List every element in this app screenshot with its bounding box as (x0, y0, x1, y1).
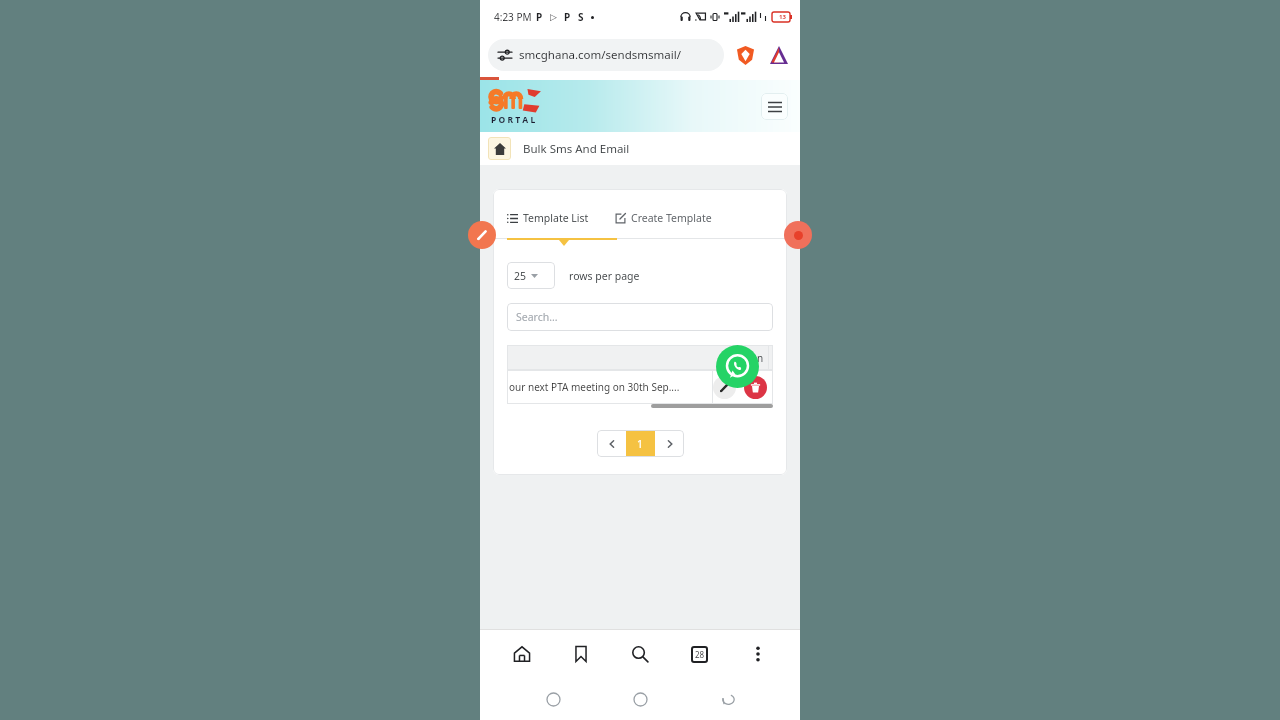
staticText: Template List (523, 211, 589, 225)
button[interactable]: Tabs, 28 open (682, 637, 716, 671)
button[interactable]: Compose (468, 221, 496, 249)
button[interactable]: Previous page (597, 430, 626, 457)
button[interactable]: smcghana.com/sendsmsmail/ (488, 39, 724, 71)
button[interactable]: Search... (507, 303, 773, 331)
staticText: smcghana.com/sendsmsmail/ (519, 47, 681, 63)
button[interactable]: Help (784, 221, 812, 249)
staticText: n (757, 351, 764, 365)
button[interactable]: Edit (713, 376, 736, 399)
button[interactable]: Delete (744, 376, 767, 399)
staticText: ▷ (550, 12, 557, 22)
button[interactable]: Bookmarks (564, 637, 598, 671)
staticText: 13 (779, 13, 786, 21)
button[interactable]: Template List (507, 209, 597, 227)
button[interactable]: Home (505, 637, 539, 671)
staticText: 1 (637, 437, 644, 451)
button[interactable]: Search (623, 637, 657, 671)
staticText: P (536, 10, 543, 24)
staticText: Create Template (631, 211, 712, 225)
staticText: rows per page (569, 269, 640, 283)
button[interactable]: Home (488, 137, 511, 160)
button[interactable]: Next page (655, 430, 684, 457)
button[interactable]: 1 (626, 430, 655, 457)
button[interactable]: Home (625, 684, 655, 714)
button[interactable]: Create Template (615, 209, 720, 227)
staticText: our next PTA meeting on 30th Sep.... (509, 380, 680, 394)
staticText: 28 (695, 649, 705, 660)
staticText: 4:23 PM (494, 10, 532, 24)
staticText: Search... (516, 310, 558, 324)
button[interactable]: More options (741, 637, 775, 671)
button[interactable]: Back (713, 684, 743, 714)
button[interactable]: Recents (538, 684, 568, 714)
button[interactable]: Menu (761, 93, 788, 120)
staticText: S (578, 10, 584, 24)
button[interactable]: Brave Shields (732, 42, 758, 68)
button[interactable]: Brave Rewards (766, 42, 792, 68)
staticText: P (564, 10, 571, 24)
staticText: 25 (514, 269, 527, 283)
staticText: Bulk Sms And Email (523, 141, 630, 157)
button[interactable]: Chat on WhatsApp (716, 345, 759, 388)
staticText: P O R T A L (491, 114, 536, 126)
button[interactable]: 25 (507, 262, 555, 289)
